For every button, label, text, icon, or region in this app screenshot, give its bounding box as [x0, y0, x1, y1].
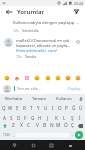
staticText: W — [8, 105, 13, 111]
button[interactable]: K — [52, 114, 60, 121]
staticText: F — [24, 115, 27, 121]
button[interactable]: Q — [1, 103, 7, 112]
button[interactable]: Send — [75, 131, 83, 139]
staticText: Q — [2, 105, 6, 111]
button[interactable]: Filter — [72, 7, 81, 16]
button[interactable]: Ç — [69, 121, 76, 130]
staticText: X — [20, 122, 23, 129]
staticText: Paylaş — [68, 86, 81, 91]
button[interactable]: Emoji 6 — [64, 74, 72, 82]
staticText: D — [17, 115, 21, 121]
button[interactable]: Ö — [62, 121, 69, 130]
staticText: N — [50, 122, 54, 129]
button[interactable]: V — [33, 121, 41, 130]
button[interactable]: Shift — [0, 121, 9, 130]
button[interactable]: O — [56, 103, 63, 112]
button[interactable]: X — [17, 121, 25, 130]
button[interactable]: Emoji 3 — [33, 74, 41, 82]
button[interactable]: H — [36, 114, 44, 121]
staticText: Ü — [79, 105, 83, 111]
button[interactable]: C — [25, 121, 33, 130]
button[interactable]: Y — [35, 103, 42, 112]
button[interactable]: maflet23 Donanımsal en çok kapasitesi, a… — [0, 35, 85, 59]
button[interactable]: Emoji 1 — [13, 74, 21, 82]
staticText: İ — [79, 115, 81, 121]
button[interactable]: Like — [74, 38, 81, 45]
staticText: K — [55, 115, 58, 121]
staticText: A — [3, 115, 6, 121]
button[interactable]: E — [14, 103, 21, 112]
button[interactable]: Emoji 4 — [44, 74, 52, 82]
button[interactable]: Emoji 0 — [3, 74, 11, 82]
staticText: B — [43, 122, 47, 129]
button[interactable]: A — [1, 114, 8, 121]
staticText: Kullanıcıadıyla dengen paylaşıp filmiye? — [13, 20, 79, 26]
button[interactable]: Tamam — [26, 94, 51, 103]
button[interactable]: Home — [29, 141, 38, 150]
staticText: Tamam — [32, 96, 46, 101]
staticText: M — [56, 122, 61, 129]
button[interactable]: Keyboard — [66, 141, 75, 150]
staticText: G — [31, 115, 35, 121]
staticText: T — [30, 105, 33, 111]
staticText: P — [65, 105, 68, 111]
staticText: 20:44 — [74, 1, 83, 6]
staticText: O — [58, 105, 62, 111]
staticText: V — [36, 122, 39, 129]
button[interactable]: P — [63, 103, 70, 112]
button[interactable]: F — [22, 114, 29, 121]
staticText: ?123 — [3, 133, 10, 137]
button[interactable]: J — [44, 114, 52, 121]
button[interactable]: Backspace — [76, 121, 85, 130]
button[interactable]: I — [49, 103, 56, 112]
button[interactable]: Ğ — [70, 103, 77, 112]
button[interactable]: Paylaş — [67, 86, 82, 91]
button[interactable]: , — [11, 131, 16, 139]
staticText: H — [38, 115, 42, 121]
button[interactable]: N — [48, 121, 55, 130]
button[interactable]: ?123 — [2, 131, 11, 139]
staticText: Merhaba — [5, 96, 22, 101]
button[interactable]: W — [7, 103, 14, 112]
staticText: Z — [12, 122, 15, 129]
button[interactable]: U — [42, 103, 49, 112]
staticText: I — [52, 105, 54, 111]
button[interactable]: Yorum ekle... — [14, 86, 67, 91]
button[interactable]: Voice input — [76, 94, 85, 103]
button[interactable]: Back — [10, 141, 19, 150]
button[interactable]: Emoji 7 — [74, 74, 82, 82]
button[interactable]: R — [21, 103, 28, 112]
button[interactable]: T — [28, 103, 35, 112]
button[interactable]: Emoji 2 — [23, 74, 31, 82]
staticText: Ö — [64, 122, 68, 129]
staticText: Görüntüle — [22, 28, 39, 33]
button[interactable]: Recents — [47, 141, 56, 150]
button[interactable]: Back — [4, 7, 13, 16]
button[interactable]: S — [8, 114, 15, 121]
staticText: Yanıtla — [25, 54, 37, 59]
button[interactable]: B — [41, 121, 48, 130]
button[interactable]: Z — [9, 121, 17, 130]
staticText: Yorum ekle... — [17, 86, 42, 91]
button[interactable]: Ş — [68, 114, 76, 121]
staticText: 12s — [16, 54, 22, 59]
button[interactable]: Kullanıcıadıyla dengen paylaşıp filmiye? — [0, 17, 85, 35]
button[interactable]: D — [15, 114, 22, 121]
staticText: Ş — [71, 115, 74, 121]
staticText: R — [23, 105, 26, 111]
staticText: maflet23 Donanımsal en çok kapasitesi, a… — [16, 38, 72, 48]
staticText: . — [72, 132, 74, 138]
staticText: J — [47, 115, 49, 121]
button[interactable]: M — [55, 121, 62, 130]
button[interactable]: Ü — [77, 103, 84, 112]
button[interactable]: Kullanıcı — [51, 94, 76, 103]
staticText: Ç — [71, 122, 75, 129]
button[interactable]: İ — [76, 114, 84, 121]
staticText: Yorumlar — [17, 8, 45, 16]
button[interactable]: Merhaba — [0, 94, 26, 103]
button[interactable]: L — [60, 114, 68, 121]
button[interactable]: . — [70, 131, 75, 139]
button[interactable]: G — [29, 114, 36, 121]
button[interactable]: Emoji 5 — [54, 74, 62, 82]
